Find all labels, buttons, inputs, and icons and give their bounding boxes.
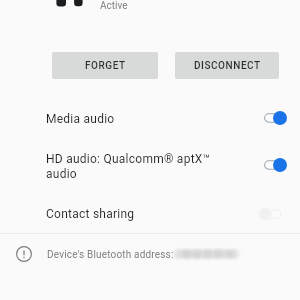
button[interactable]: Toggle off [262, 202, 296, 226]
staticText: FORGET [85, 60, 126, 72]
staticText: audio [46, 167, 77, 181]
staticText: HD audio: Qualcomm® aptX™ [46, 152, 211, 166]
button[interactable]: Device information [0, 234, 300, 279]
staticText: Active [100, 0, 128, 12]
staticText: Device's Bluetooth address: [47, 249, 174, 261]
button[interactable]: FORGET [52, 52, 158, 79]
button[interactable]: DISCONNECT [175, 52, 279, 79]
other: Device information [16, 246, 32, 262]
button[interactable]: Toggle on [262, 153, 296, 177]
staticText: DISCONNECT [194, 60, 261, 72]
button[interactable]: Media audio [0, 94, 300, 141]
button[interactable]: Contact sharing [0, 190, 300, 237]
staticText: Contact sharing [46, 207, 135, 221]
button[interactable]: Toggle on [262, 106, 296, 130]
staticText: Media audio [46, 112, 115, 126]
button[interactable]: HD audio: Qualcomm® aptX™ [0, 141, 300, 188]
